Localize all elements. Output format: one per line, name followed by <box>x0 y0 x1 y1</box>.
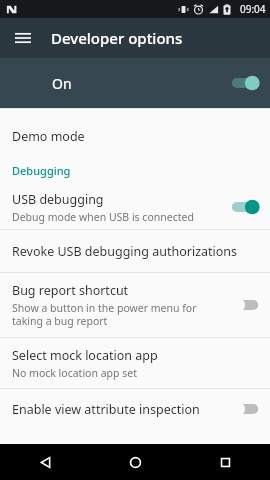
button[interactable]: Recent apps <box>180 444 270 480</box>
button[interactable]: Enable view attribute inspection <box>0 389 270 429</box>
button[interactable]: Revoke USB debugging authorizations <box>0 230 270 272</box>
button[interactable]: On <box>0 58 270 108</box>
staticText: Debugging <box>12 163 71 178</box>
button[interactable]: Back <box>0 444 90 480</box>
button[interactable]: Open navigation menu <box>6 21 40 55</box>
staticText: Select mock location app <box>12 347 158 364</box>
button[interactable]: Bug report shortcut <box>0 273 270 337</box>
staticText: Developer options <box>51 28 183 48</box>
button[interactable]: Demo mode <box>0 118 270 155</box>
staticText: Debug mode when USB is connected <box>12 210 194 224</box>
staticText: 09:04 <box>240 2 266 16</box>
staticText: Enable view attribute inspection <box>12 401 200 418</box>
staticText: On <box>52 74 230 93</box>
staticText: Demo mode <box>12 128 85 145</box>
button[interactable]: Select mock location app <box>0 338 270 388</box>
staticText: No mock location app set <box>12 366 137 380</box>
button[interactable]: USB debugging <box>0 185 270 229</box>
staticText: Revoke USB debugging authorizations <box>12 243 238 260</box>
staticText: Show a button in the power menu for taki… <box>12 301 197 328</box>
button[interactable]: Home <box>90 444 180 480</box>
staticText: Bug report shortcut <box>12 282 129 299</box>
staticText: USB debugging <box>12 191 104 208</box>
